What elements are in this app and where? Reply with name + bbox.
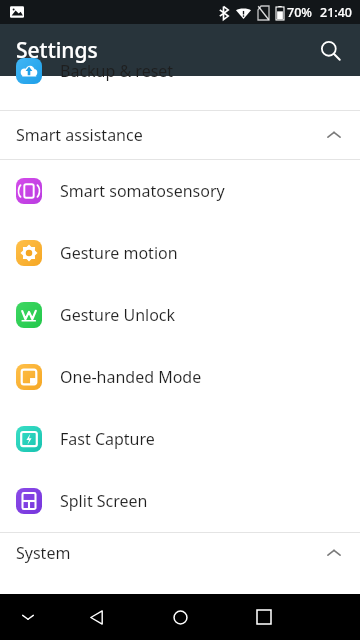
button[interactable]: Back (72, 594, 120, 640)
staticText: 21:40 (320, 4, 353, 21)
staticText: Gesture motion (60, 242, 178, 264)
staticText: 70% (287, 4, 312, 21)
button[interactable]: Hide (8, 597, 48, 637)
button[interactable]: System (0, 533, 360, 573)
button[interactable]: Home (156, 594, 204, 640)
button[interactable]: Gesture motion (0, 222, 360, 284)
staticText: Gesture Unlock (60, 304, 176, 326)
button[interactable]: Fast Capture (0, 408, 360, 470)
button[interactable]: Smart assistance (0, 111, 360, 159)
staticText: One-handed Mode (60, 366, 202, 388)
button[interactable]: Search (308, 28, 352, 72)
staticText: Backup & reset (60, 60, 174, 82)
staticText: System (16, 542, 326, 564)
staticText: Settings (16, 36, 98, 65)
button[interactable]: Backup & reset (0, 76, 360, 110)
staticText: Smart assistance (16, 124, 326, 146)
button[interactable]: Smart somatosensory (0, 160, 360, 222)
button[interactable]: One-handed Mode (0, 346, 360, 408)
staticText: Smart somatosensory (60, 180, 225, 202)
button[interactable]: Recents (240, 594, 288, 640)
staticText: Split Screen (60, 490, 148, 512)
staticText: Fast Capture (60, 428, 155, 450)
button[interactable]: Split Screen (0, 470, 360, 532)
button[interactable]: Gesture Unlock (0, 284, 360, 346)
